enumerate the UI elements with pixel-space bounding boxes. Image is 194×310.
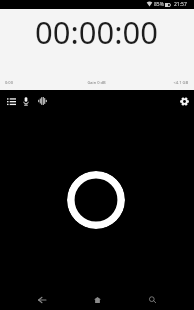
- button[interactable]: Home: [86, 289, 108, 310]
- button[interactable]: Microphone: [19, 94, 33, 108]
- button[interactable]: Start recording: [67, 171, 125, 229]
- button[interactable]: Recordings list: [4, 94, 18, 108]
- button[interactable]: Audio waveform: [35, 94, 49, 108]
- staticText: 21:57: [174, 1, 187, 8]
- staticText: Gain 0 dB: [66, 80, 127, 85]
- staticText: <4.1 GB: [127, 80, 188, 85]
- staticText: 00:00:00: [35, 11, 159, 51]
- staticText: 0:00: [5, 80, 66, 85]
- button[interactable]: Back: [31, 289, 53, 310]
- button[interactable]: Settings: [177, 94, 191, 108]
- staticText: 85%: [154, 1, 164, 8]
- button[interactable]: Search: [141, 289, 163, 310]
